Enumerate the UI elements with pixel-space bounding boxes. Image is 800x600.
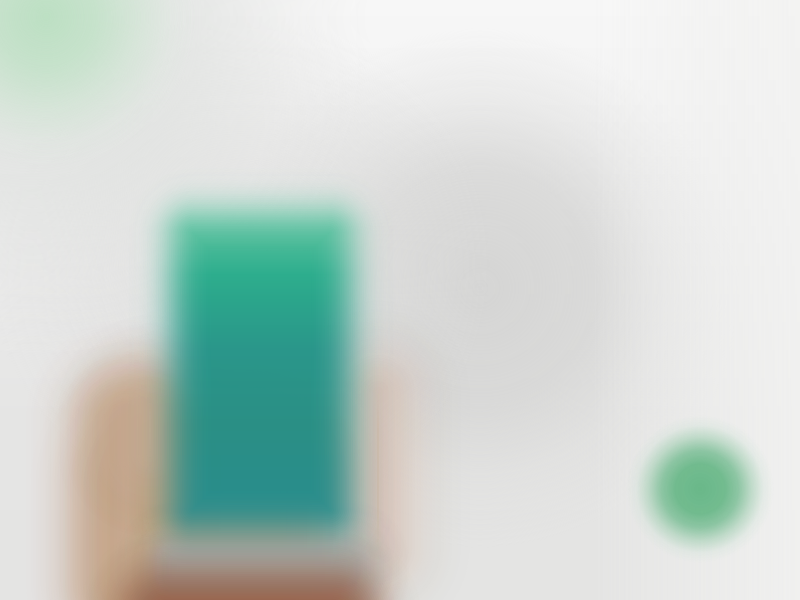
- button[interactable]: App mark: [0, 0, 800, 600]
